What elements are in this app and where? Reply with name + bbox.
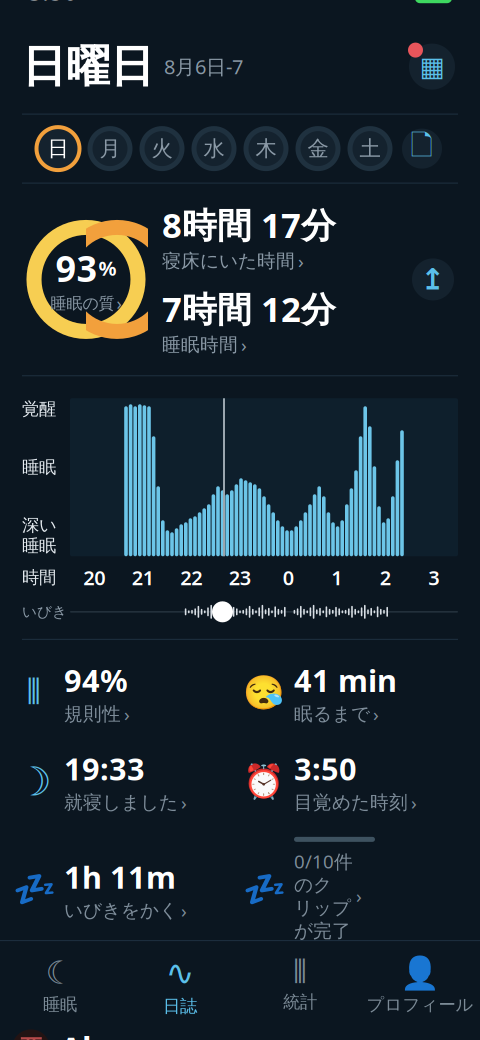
staticText: 睡眠の質: [50, 293, 114, 313]
staticText: ›: [356, 883, 362, 908]
staticText: 41 min: [294, 660, 397, 700]
staticText: 眠るまで: [294, 702, 370, 725]
staticText: 7時間 12分: [162, 285, 336, 331]
staticText: ∿: [165, 953, 194, 992]
staticText: ▦: [419, 51, 444, 82]
staticText: 就寝しました: [64, 791, 178, 814]
staticText: 22: [180, 564, 202, 591]
staticText: 日誌: [163, 995, 197, 1017]
staticText: ›: [181, 898, 187, 923]
staticText: 睡眠時間: [162, 333, 238, 356]
staticText: 94%: [64, 660, 128, 700]
staticText: 亜: [19, 1034, 43, 1040]
staticText: 深い: [22, 515, 57, 536]
staticText: 93: [55, 244, 97, 292]
staticText: 21: [132, 564, 154, 591]
staticText: プロフィール: [366, 994, 473, 1015]
button[interactable]: 💤: [14, 856, 236, 923]
staticText: 睡眠: [43, 994, 77, 1015]
staticText: 8時間 17分: [162, 202, 336, 248]
button[interactable]: 土: [344, 123, 396, 175]
button[interactable]: 8時間 17分: [162, 202, 396, 273]
staticText: 😪: [243, 674, 285, 712]
staticText: 目覚めた時刻: [294, 791, 408, 814]
staticText: 8月6日-7: [164, 53, 243, 80]
staticText: ›: [241, 332, 247, 357]
staticText: 🗋: [410, 125, 433, 172]
staticText: 日曜日: [22, 40, 154, 94]
staticText: ☾: [45, 955, 74, 991]
button[interactable]: 共有: [408, 254, 458, 304]
staticText: 規則性: [64, 702, 121, 725]
staticText: 23: [229, 564, 251, 591]
staticText: 0/10件のクリップが完了: [294, 849, 353, 942]
staticText: ›: [116, 292, 121, 315]
button[interactable]: ☽: [14, 748, 236, 815]
staticText: %: [98, 255, 116, 281]
staticText: ⦀: [293, 957, 307, 988]
staticText: 統計: [283, 991, 317, 1013]
button[interactable]: 💤: [244, 837, 466, 942]
staticText: 土: [359, 135, 380, 162]
button[interactable]: ⦀: [240, 951, 360, 1019]
staticText: ⦀: [26, 676, 41, 710]
button[interactable]: メモ: [396, 123, 448, 175]
button[interactable]: 7時間 12分: [162, 285, 396, 357]
staticText: 覚醒: [22, 398, 56, 420]
staticText: 3: [428, 564, 439, 591]
staticText: 金: [307, 135, 328, 162]
staticText: ☽: [16, 759, 52, 804]
staticText: 👤: [400, 954, 440, 991]
staticText: 寝床にいた時間: [162, 250, 295, 272]
staticText: ↥: [420, 263, 445, 296]
staticText: 睡眠: [22, 456, 56, 478]
button[interactable]: 水: [188, 123, 240, 175]
staticText: 水: [203, 135, 224, 162]
staticText: ›: [411, 790, 417, 815]
staticText: 1: [331, 564, 342, 591]
staticText: 3:50: [28, 0, 77, 7]
staticText: ›: [298, 249, 304, 273]
button[interactable]: 月: [84, 123, 136, 175]
button[interactable]: ⦀: [14, 660, 236, 726]
button[interactable]: 火: [136, 123, 188, 175]
button[interactable]: 👤: [360, 948, 480, 1021]
staticText: 0: [283, 564, 294, 591]
staticText: ›: [373, 701, 379, 726]
staticText: ⏰: [243, 763, 285, 801]
staticText: 月: [99, 135, 120, 162]
staticText: ›: [124, 701, 130, 726]
staticText: 時間: [22, 567, 56, 588]
button[interactable]: 日: [32, 123, 84, 175]
staticText: いびきをかく: [64, 899, 178, 922]
staticText: いびき: [22, 603, 67, 621]
staticText: 睡眠: [22, 535, 56, 556]
staticText: 19:33: [64, 748, 145, 789]
button[interactable]: ∿: [120, 947, 240, 1023]
staticText: 💤: [12, 870, 55, 909]
button[interactable]: 木: [240, 123, 292, 175]
staticText: Ahomaro: [60, 1027, 207, 1040]
staticText: 3:50: [294, 748, 357, 789]
staticText: 1h 11m: [64, 856, 176, 897]
staticText: 💤: [242, 870, 285, 909]
button[interactable]: 😪: [244, 660, 466, 726]
button[interactable]: 93: [22, 209, 150, 349]
button[interactable]: ☾: [0, 949, 120, 1021]
staticText: 火: [151, 135, 172, 162]
staticText: 日: [47, 135, 68, 162]
button[interactable]: ⏰: [244, 748, 466, 815]
staticText: ›: [181, 790, 187, 815]
staticText: 2: [380, 564, 391, 591]
button[interactable]: 金: [292, 123, 344, 175]
staticText: 木: [255, 135, 276, 162]
staticText: 20: [83, 564, 105, 591]
button[interactable]: カレンダー: [406, 41, 458, 93]
